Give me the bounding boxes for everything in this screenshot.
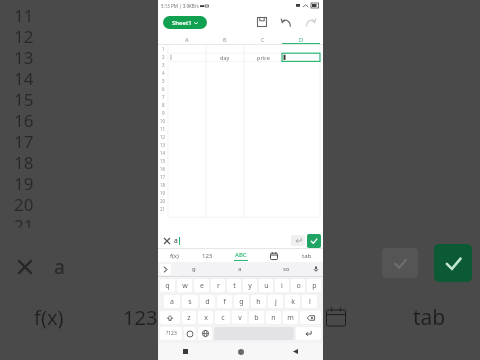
staticText: f(x) (34, 304, 64, 331)
button[interactable]: B (206, 33, 244, 45)
button[interactable]: r (211, 279, 225, 292)
button[interactable]: 123 (191, 249, 224, 262)
staticText: 21 (14, 214, 34, 228)
button[interactable]: s (182, 295, 198, 308)
button[interactable]: Undo (276, 12, 296, 32)
staticText: o (296, 281, 301, 291)
staticText: 10 (160, 118, 166, 124)
button[interactable]: u (259, 279, 273, 292)
button[interactable]: C (244, 33, 282, 45)
button[interactable]: v (232, 311, 247, 324)
staticText: 8 (162, 102, 165, 108)
button[interactable]: Enter (296, 327, 321, 340)
button[interactable]: q (160, 279, 175, 292)
staticText: b (254, 313, 259, 323)
button[interactable]: Newline (291, 235, 305, 246)
staticText: c (221, 313, 225, 323)
button[interactable]: y (243, 279, 257, 292)
staticText: m (287, 313, 294, 323)
button[interactable]: ABC (224, 249, 257, 262)
staticText: t (233, 281, 236, 291)
button[interactable]: Save (252, 12, 272, 32)
button[interactable]: Cancel (160, 234, 173, 247)
staticText: g (192, 265, 196, 273)
button[interactable]: d (200, 295, 215, 308)
staticText: 13 (14, 46, 34, 67)
staticText: 15 (160, 158, 166, 164)
button[interactable]: g (171, 262, 217, 276)
staticText: tab (413, 303, 446, 332)
staticText: v (238, 313, 242, 323)
button[interactable]: x (198, 311, 213, 324)
button[interactable]: f (217, 295, 232, 308)
button[interactable]: ?123 (160, 327, 182, 340)
staticText: p (312, 281, 317, 291)
button[interactable]: i (275, 279, 289, 292)
staticText: s (188, 297, 192, 307)
button[interactable]: t (227, 279, 241, 292)
staticText: ?123 (166, 330, 177, 337)
button[interactable] (160, 311, 180, 324)
staticText: 17 (160, 174, 166, 180)
staticText: f(x) (170, 252, 179, 260)
button[interactable]: Emoji (184, 327, 196, 340)
button[interactable]: D (282, 33, 320, 45)
staticText: k (291, 297, 295, 307)
staticText: 15 (14, 88, 34, 109)
button[interactable]: o (291, 279, 305, 292)
button[interactable]: Change language (198, 327, 212, 340)
button[interactable]: Home (213, 343, 268, 360)
staticText: Sheet1 (172, 19, 192, 27)
button[interactable]: c (215, 311, 230, 324)
staticText: 5 (162, 78, 165, 84)
button[interactable]: p (307, 279, 321, 292)
staticText: 21 (160, 206, 166, 212)
button[interactable]: g (234, 295, 249, 308)
button[interactable]: h (251, 295, 266, 308)
staticText: 12 (160, 134, 166, 140)
staticText: a (170, 297, 174, 307)
button[interactable]: so (263, 262, 309, 276)
button[interactable]: tab (290, 249, 323, 262)
button[interactable]: f(x) (158, 249, 191, 262)
staticText: l (309, 297, 311, 307)
button[interactable]: Confirm (307, 234, 321, 248)
staticText: tab (302, 252, 312, 260)
button[interactable]: a (217, 262, 263, 276)
staticText: 20 (14, 193, 34, 214)
button[interactable]: j (268, 295, 283, 308)
button[interactable]: n (266, 311, 281, 324)
button[interactable]: k (285, 295, 300, 308)
button[interactable]: b (249, 311, 264, 324)
staticText: 9 (162, 110, 165, 116)
button[interactable]: More suggestions (160, 264, 171, 275)
button[interactable]: Redo (300, 12, 320, 32)
button[interactable] (300, 311, 321, 324)
button[interactable]: Voice input (309, 262, 323, 276)
button[interactable]: Back (268, 343, 323, 360)
button[interactable]: Sheet1 (163, 16, 207, 29)
button[interactable]: z (182, 311, 196, 324)
button[interactable]: w (177, 279, 192, 292)
staticText: a (174, 236, 178, 245)
staticText: 14 (14, 67, 34, 88)
button[interactable]: Date (257, 249, 290, 262)
staticText: day (220, 54, 230, 61)
staticText: a (238, 265, 242, 273)
button[interactable]: l (302, 295, 317, 308)
button[interactable]: Recents (158, 343, 213, 360)
staticText: 13 (160, 142, 166, 148)
staticText: C (261, 36, 265, 43)
staticText: x (204, 313, 208, 323)
staticText: i (281, 281, 283, 291)
button[interactable]: m (283, 311, 298, 324)
staticText: n (271, 313, 276, 323)
staticText: 4 (162, 70, 165, 76)
staticText: 2 (162, 54, 165, 60)
button[interactable]: e (194, 279, 209, 292)
button[interactable]: a (164, 295, 180, 308)
button[interactable]: A (168, 33, 206, 45)
staticText: 6 (162, 86, 165, 92)
staticText: w (182, 281, 188, 291)
